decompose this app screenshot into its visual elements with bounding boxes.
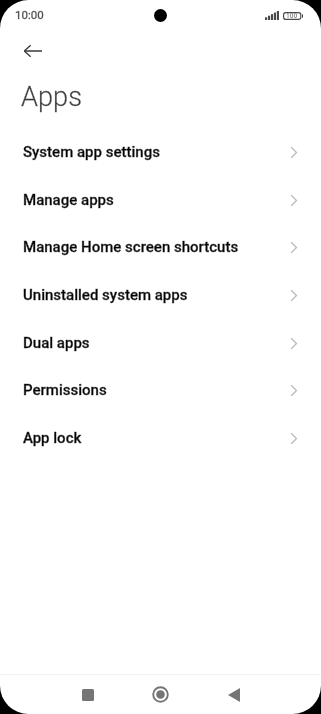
staticText: Apps [21, 81, 82, 113]
staticText: 10:00 [15, 8, 44, 21]
staticText: Uninstalled system apps [23, 286, 188, 304]
staticText: Dual apps [23, 334, 90, 352]
staticText: Manage Home screen shortcuts [23, 238, 239, 256]
button[interactable]: Back [20, 38, 45, 63]
staticText: App lock [23, 429, 82, 447]
staticText: Uninstalled system apps [23, 286, 188, 304]
button[interactable]: Manage apps [0, 176, 321, 224]
staticText: Permissions [23, 381, 107, 399]
staticText: System app settings [23, 143, 160, 161]
button[interactable]: Manage Home screen shortcuts [0, 223, 321, 271]
staticText: Manage apps [23, 191, 114, 209]
button[interactable]: Uninstalled system apps [0, 271, 321, 319]
staticText: 100 [286, 12, 298, 20]
staticText: Manage Home screen shortcuts [23, 238, 239, 256]
button[interactable]: Permissions [0, 366, 321, 414]
staticText: Dual apps [23, 334, 90, 352]
staticText: App lock [23, 429, 82, 447]
button[interactable]: System app settings [0, 128, 321, 176]
staticText: Permissions [23, 381, 107, 399]
button[interactable]: App lock [0, 414, 321, 462]
staticText: 10:00 [15, 8, 44, 21]
staticText: Apps [21, 81, 82, 113]
staticText: Manage apps [23, 191, 114, 209]
button[interactable]: Dual apps [0, 319, 321, 367]
button[interactable]: Recents [71, 678, 104, 711]
button[interactable]: Back [217, 678, 250, 711]
staticText: System app settings [23, 143, 160, 161]
button[interactable]: Home [144, 678, 177, 711]
